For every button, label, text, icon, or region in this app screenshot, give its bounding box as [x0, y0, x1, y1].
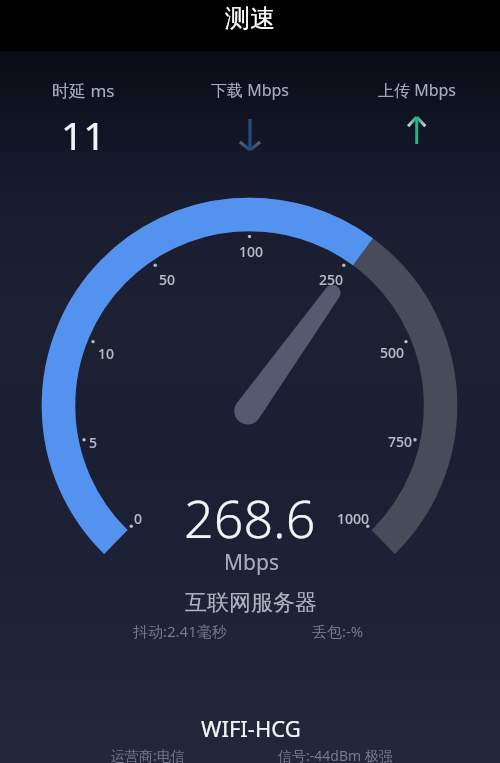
staticText: 250	[319, 270, 344, 289]
staticText: 抖动:2.41毫秒	[133, 621, 227, 641]
staticText: 丢包:-%	[312, 621, 364, 641]
staticText: WIFI-HCG	[201, 713, 301, 743]
staticText: 测速	[225, 3, 275, 34]
staticText: 上传 Mbps	[378, 79, 457, 101]
staticText: 50	[159, 270, 176, 289]
staticText: 0	[134, 509, 143, 528]
staticText: 750	[388, 432, 413, 451]
button[interactable]: Download	[236, 115, 264, 155]
button[interactable]	[0, 0, 500, 51]
staticText: Mbps	[224, 548, 279, 577]
staticText: 100	[239, 242, 264, 261]
staticText: 10	[98, 344, 115, 363]
staticText: 500	[380, 343, 405, 362]
staticText: 268.6	[184, 482, 316, 552]
staticText: 互联网服务器	[185, 589, 317, 617]
button[interactable]: Upload	[403, 112, 431, 152]
staticText: 1000	[337, 509, 370, 528]
staticText: 下载 Mbps	[211, 79, 290, 101]
staticText: 信号:-44dBm 极强	[278, 746, 393, 763]
staticText: 时延 ms	[52, 79, 115, 102]
staticText: 5	[89, 433, 98, 452]
staticText: 11	[61, 108, 106, 161]
staticText: 运营商:电信	[111, 746, 185, 763]
